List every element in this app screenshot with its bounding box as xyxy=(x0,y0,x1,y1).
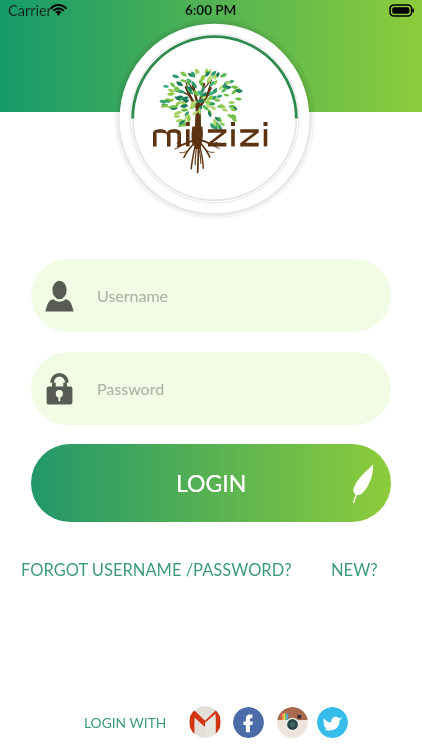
staticText: 6:00 PM xyxy=(185,2,237,18)
button[interactable]: Sign in with Instagram xyxy=(277,707,308,738)
button[interactable]: FORGOT USERNAME /PASSWORD? xyxy=(21,560,292,580)
staticText: Carrier xyxy=(8,2,52,19)
staticText: LOGIN WITH xyxy=(84,714,167,731)
button[interactable]: Username xyxy=(31,259,391,332)
button[interactable]: Sign in with Gmail xyxy=(189,706,221,738)
button[interactable]: Sign in with Twitter xyxy=(317,707,348,738)
staticText: FORGOT USERNAME /PASSWORD? xyxy=(21,560,292,580)
staticText: LOGIN xyxy=(176,469,247,497)
button[interactable]: Sign in with Facebook xyxy=(233,707,264,738)
button[interactable]: NEW? xyxy=(331,560,378,580)
staticText: Password xyxy=(97,379,165,398)
button[interactable]: Password xyxy=(31,352,391,425)
staticText: Username xyxy=(97,286,169,305)
staticText: NEW? xyxy=(331,560,378,580)
button[interactable]: LOGIN xyxy=(31,444,391,522)
